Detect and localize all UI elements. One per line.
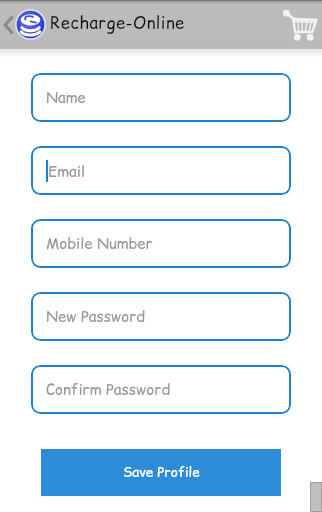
button[interactable]: Email	[31, 146, 291, 195]
staticText: Save Profile	[123, 463, 200, 482]
staticText: Email	[48, 161, 86, 182]
staticText: Name	[46, 87, 86, 108]
button[interactable]: Mobile Number	[31, 219, 291, 268]
staticText: Confirm Password	[46, 379, 171, 400]
button[interactable]: New Password	[31, 292, 291, 341]
button[interactable]: Save Profile	[41, 449, 281, 496]
button[interactable]: Confirm Password	[31, 365, 291, 414]
staticText: Mobile Number	[46, 233, 153, 254]
button[interactable]: Name	[31, 73, 291, 122]
staticText: Recharge-Online	[50, 12, 185, 35]
staticText: New Password	[46, 306, 146, 327]
button[interactable]	[278, 0, 322, 49]
